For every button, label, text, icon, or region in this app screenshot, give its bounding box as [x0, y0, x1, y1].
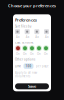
staticText: per page	[36, 64, 49, 68]
staticText: Aa	[16, 35, 19, 39]
staticText: On	[23, 52, 27, 56]
staticText: On	[30, 52, 34, 56]
staticText: Preferences	[15, 17, 37, 23]
button[interactable]: Sort option	[34, 29, 39, 39]
staticText: 100	[25, 64, 31, 68]
staticText: Aa	[35, 35, 38, 39]
button[interactable]: Save	[15, 83, 49, 89]
button[interactable]: Case option	[43, 45, 49, 56]
button[interactable]: Case option	[29, 45, 35, 56]
button[interactable]: Case option	[36, 45, 42, 56]
button[interactable]: Sort option	[25, 29, 30, 39]
staticText: Aa	[26, 35, 29, 39]
button[interactable]: Sort option	[44, 29, 49, 39]
staticText: On	[37, 52, 41, 56]
button[interactable]: Sort option	[15, 29, 20, 39]
staticText: Sort files by	[15, 25, 31, 28]
staticText: Other options	[15, 58, 35, 61]
staticText: On	[16, 52, 20, 56]
staticText: Apply to all new documents	[15, 71, 37, 78]
staticText: Save	[28, 84, 36, 89]
staticText: Case sensitive	[15, 41, 34, 44]
button[interactable]: Case option	[22, 45, 28, 56]
staticText: Aa	[45, 35, 48, 39]
button[interactable]: Case option	[15, 45, 21, 56]
staticText: Choose your preferences	[8, 3, 56, 8]
staticText: Limit	[15, 64, 21, 68]
staticText: On	[44, 52, 48, 56]
